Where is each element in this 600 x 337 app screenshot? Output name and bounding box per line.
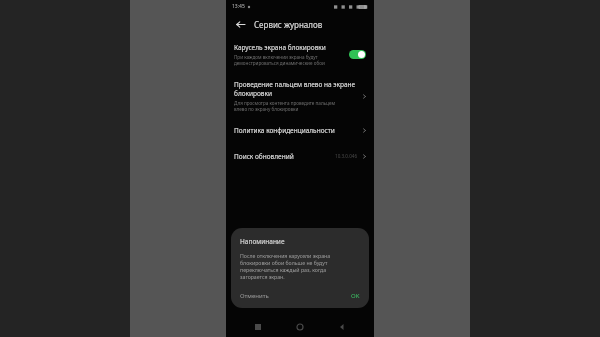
- staticText: Проведение пальцем влево на экране блоки…: [234, 80, 356, 98]
- staticText: Поиск обновлений: [234, 152, 335, 161]
- button[interactable]: Поиск обновлений: [226, 148, 374, 164]
- staticText: Политика конфиденциальности: [234, 126, 361, 135]
- button[interactable]: Политика конфиденциальности: [226, 122, 374, 138]
- staticText: Сервис журналов: [254, 19, 323, 30]
- button[interactable]: Переключатель: [349, 50, 366, 59]
- button[interactable]: Главный экран: [290, 317, 310, 337]
- staticText: Отменить: [240, 292, 269, 300]
- button[interactable]: OK: [300, 289, 360, 303]
- staticText: OK: [351, 292, 360, 300]
- button[interactable]: Карусель экрана блокировки: [226, 41, 374, 68]
- staticText: 13:45: [232, 3, 245, 10]
- button[interactable]: Недавние: [248, 317, 268, 337]
- button[interactable]: Отменить: [240, 289, 300, 303]
- staticText: 10.3.0.046: [335, 153, 358, 159]
- staticText: При каждом включении экрана будут демонс…: [234, 54, 325, 66]
- staticText: После отключения карусели экрана блокиро…: [240, 252, 331, 280]
- button[interactable]: Назад: [232, 16, 248, 32]
- staticText: Карусель экрана блокировки: [234, 43, 326, 52]
- staticText: Напоминание: [240, 237, 285, 246]
- button[interactable]: Назад: [332, 317, 352, 337]
- button[interactable]: Проведение пальцем влево на экране блоки…: [226, 80, 374, 112]
- staticText: Для просмотра контента проведите пальцем…: [234, 100, 335, 112]
